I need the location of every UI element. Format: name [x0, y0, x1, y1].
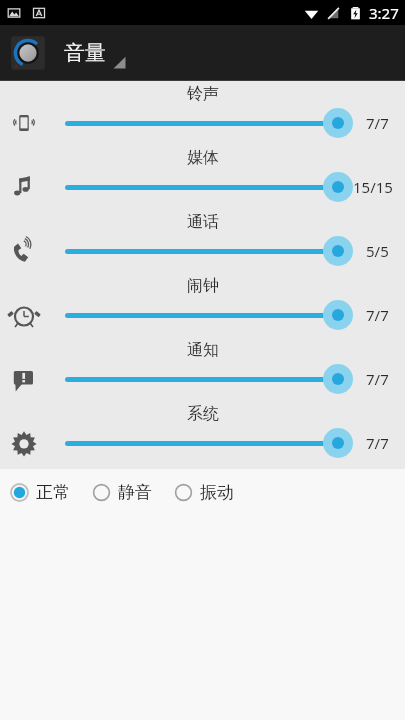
staticText: 闹钟 [187, 276, 219, 296]
button[interactable]: 通知 volume [0, 337, 405, 401]
staticText: 7/7 [366, 305, 389, 325]
button[interactable]: 铃声 volume [0, 81, 405, 145]
staticText: 静音 [118, 482, 152, 503]
staticText: 7/7 [366, 113, 389, 133]
staticText: 媒体 [187, 148, 219, 168]
staticText: 7/7 [366, 369, 389, 389]
button[interactable]: 通话 volume [0, 209, 405, 273]
staticText: 系统 [187, 404, 219, 424]
button[interactable]: Volume app [8, 33, 127, 73]
button[interactable]: 媒体 volume [0, 145, 405, 209]
button[interactable]: 静音 [88, 476, 156, 509]
staticText: 音量 [64, 40, 106, 66]
staticText: 通话 [187, 212, 219, 232]
button[interactable]: 正常 [6, 476, 74, 509]
button[interactable]: 振动 [170, 476, 238, 509]
staticText: 7/7 [366, 433, 389, 453]
staticText: 通知 [187, 340, 219, 360]
staticText: 铃声 [187, 84, 219, 104]
button[interactable]: 系统 volume [0, 401, 405, 465]
staticText: 振动 [200, 482, 234, 503]
staticText: 15/15 [353, 177, 393, 197]
staticText: 正常 [36, 482, 70, 503]
staticText: 5/5 [366, 241, 389, 261]
button[interactable]: 闹钟 volume [0, 273, 405, 337]
staticText: 3:27 [369, 3, 399, 23]
